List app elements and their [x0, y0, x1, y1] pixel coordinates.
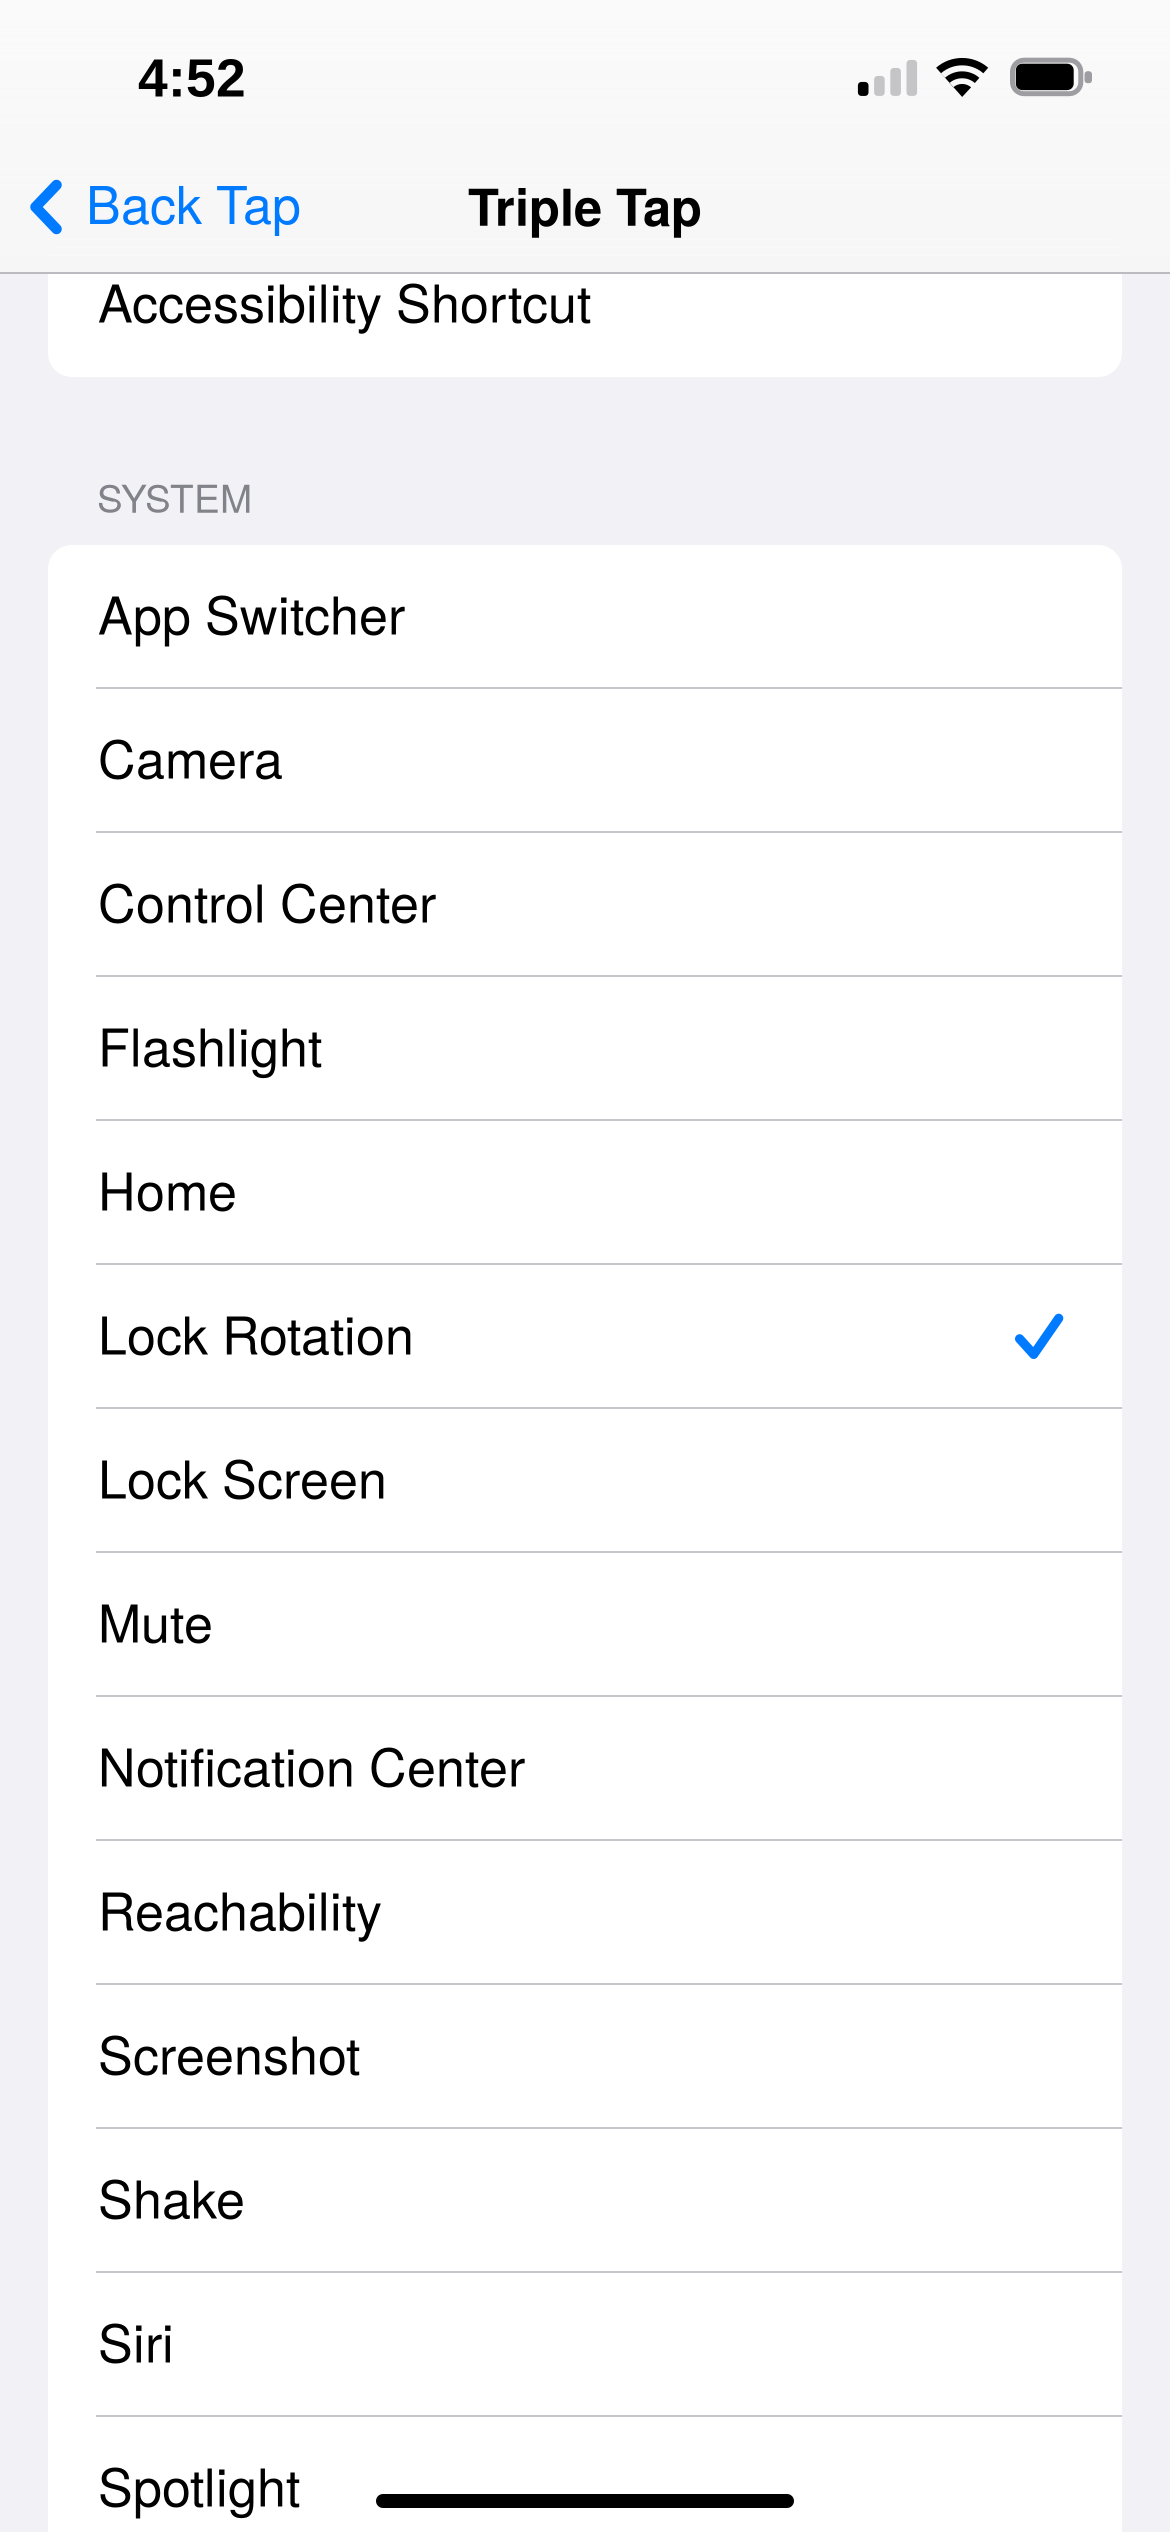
staticText: Screenshot [98, 2015, 360, 2089]
staticText: Home [98, 1151, 237, 1225]
staticText: Lock Rotation [98, 1295, 414, 1369]
staticText: Control Center [98, 863, 436, 937]
staticText: Reachability [98, 1871, 382, 1945]
staticText: Siri [98, 2303, 174, 2377]
button[interactable]: Reachability [48, 1841, 1122, 1985]
button[interactable]: Screenshot [48, 1985, 1122, 2129]
staticText: Back Tap [86, 164, 301, 239]
button[interactable]: Shake [48, 2129, 1122, 2273]
staticText: Mute [98, 1583, 213, 1657]
button[interactable]: App Switcher [48, 545, 1122, 689]
staticText: Camera [98, 719, 283, 793]
button[interactable]: Flashlight [48, 977, 1122, 1121]
button[interactable]: Home [48, 1121, 1122, 1265]
staticText: Spotlight [98, 2447, 300, 2521]
staticText: Notification Center [98, 1727, 525, 1801]
button[interactable]: Control Center [48, 833, 1122, 977]
button[interactable]: Accessibility Shortcut [48, 233, 1122, 377]
button[interactable]: Mute [48, 1553, 1122, 1697]
button[interactable]: Camera [48, 689, 1122, 833]
button[interactable]: Lock Rotation [48, 1265, 1122, 1409]
staticText: App Switcher [98, 575, 405, 649]
staticText: Shake [98, 2159, 245, 2233]
staticText: SYSTEM [97, 468, 252, 524]
button[interactable]: Notification Center [48, 1697, 1122, 1841]
button[interactable]: Lock Screen [48, 1409, 1122, 1553]
staticText: Lock Screen [98, 1439, 387, 1513]
staticText: Accessibility Shortcut [98, 263, 591, 337]
staticText: Flashlight [98, 1007, 322, 1081]
staticText: 4:52 [138, 48, 246, 108]
button[interactable]: Spotlight [48, 2417, 1122, 2532]
button[interactable]: Siri [48, 2273, 1122, 2417]
staticText: Triple Tap [468, 169, 702, 241]
button[interactable]: Back Tap [0, 142, 330, 272]
